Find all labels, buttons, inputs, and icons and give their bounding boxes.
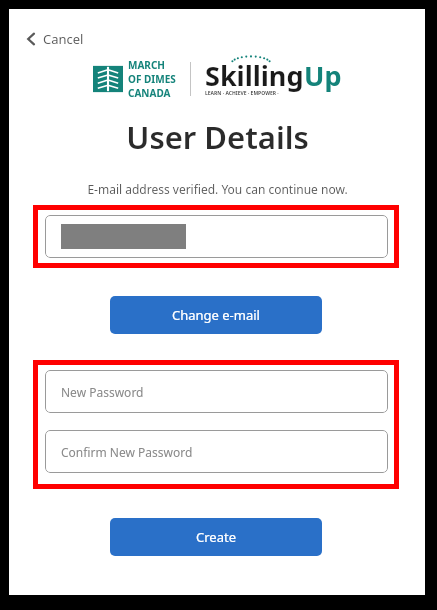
staticText: OF DIMES bbox=[128, 72, 176, 86]
staticText: Up bbox=[304, 57, 342, 94]
staticText: E-mail address verified. You can continu… bbox=[87, 181, 348, 197]
button[interactable] bbox=[45, 215, 388, 258]
button[interactable]: Change e-mail bbox=[110, 296, 322, 334]
staticText: LEARN · ACHIEVE · EMPOWER · bbox=[205, 90, 279, 97]
button[interactable]: New Password bbox=[45, 370, 388, 413]
button[interactable]: Cancel bbox=[21, 26, 89, 52]
staticText: New Password bbox=[61, 384, 144, 400]
other: March of Dimes Canada bbox=[93, 63, 123, 95]
button[interactable]: Confirm New Password bbox=[45, 430, 388, 473]
staticText: MARCH bbox=[128, 58, 165, 72]
staticText: Create bbox=[196, 528, 236, 546]
staticText: Cancel bbox=[43, 30, 84, 48]
staticText: Change e-mail bbox=[172, 306, 260, 324]
staticText: Skilling bbox=[205, 57, 304, 94]
staticText: User Details bbox=[126, 116, 309, 158]
button[interactable]: Create bbox=[110, 518, 322, 556]
staticText: Confirm New Password bbox=[61, 444, 193, 460]
staticText: CANADA bbox=[128, 86, 171, 100]
